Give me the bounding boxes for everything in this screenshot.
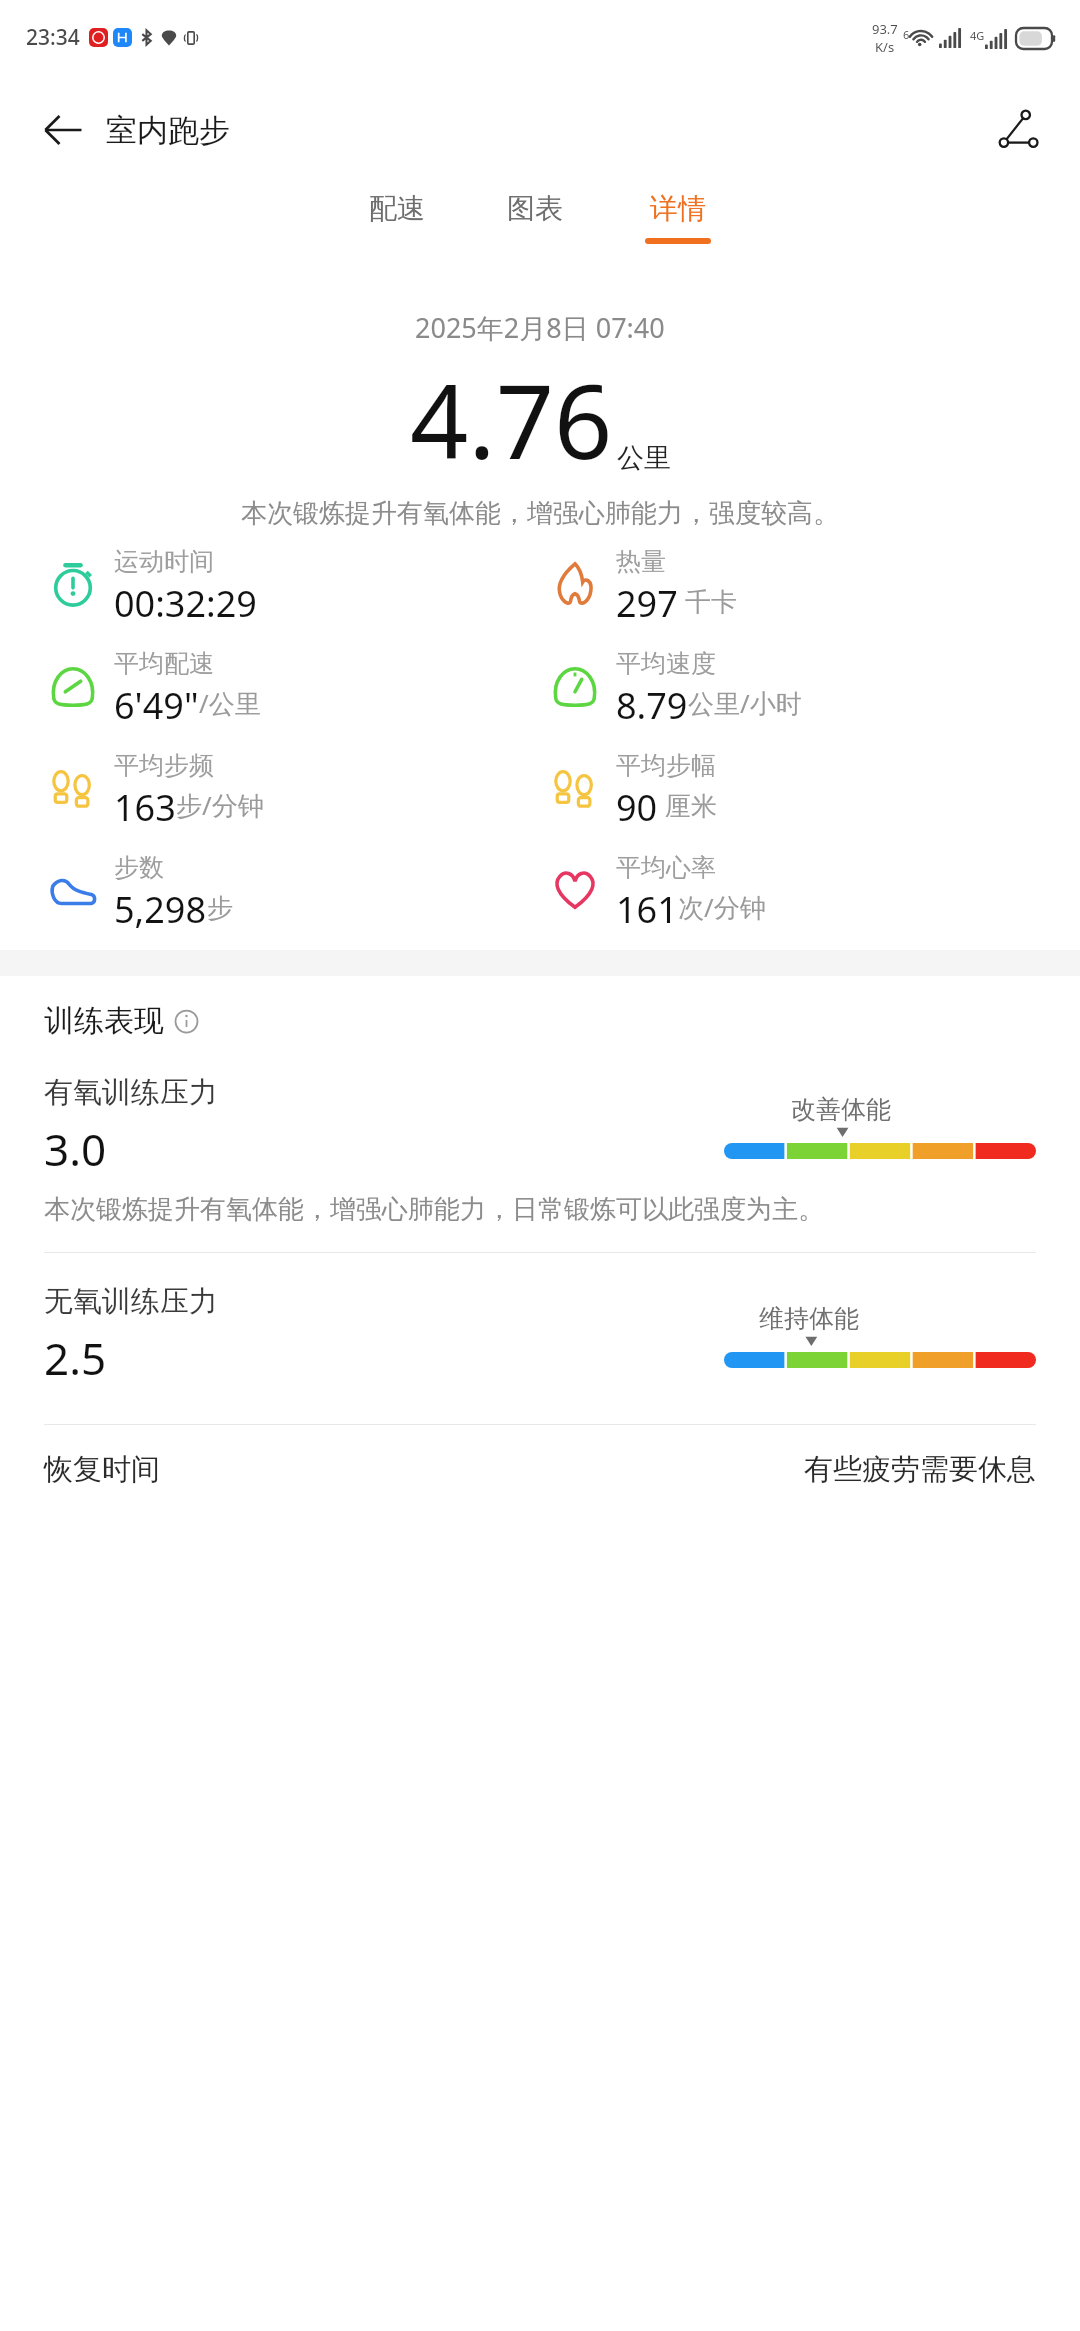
staticText: 90 [616, 783, 658, 826]
staticText: 恢复时间 [44, 1451, 160, 1488]
button[interactable]: 平均心率 [548, 852, 766, 928]
staticText: 千卡 [678, 583, 737, 619]
button[interactable]: 配速 [357, 185, 437, 244]
staticText: 297 [616, 579, 678, 622]
staticText: 公里 [617, 441, 671, 475]
staticText: 次/分钟 [678, 889, 766, 925]
staticText: 热量 [616, 546, 666, 577]
staticText: 6 [903, 27, 910, 42]
staticText: 4.76 [410, 350, 613, 489]
staticText: 无氧训练压力 [44, 1283, 218, 1320]
staticText: 163 [114, 783, 176, 826]
staticText: 图表 [507, 191, 563, 226]
staticText: 2.5 [44, 1328, 107, 1388]
button[interactable]: 运动时间 [46, 546, 257, 622]
button[interactable]: 训练表现 [44, 1002, 199, 1040]
staticText: 详情 [650, 191, 706, 226]
staticText: 厘米 [658, 787, 717, 823]
button[interactable]: 步数 [46, 852, 233, 928]
staticText: 4G [970, 28, 985, 43]
staticText: 5,298 [114, 885, 207, 928]
button[interactable]: Back [34, 101, 92, 159]
staticText: 2025年2月8日 07:40 [415, 309, 665, 346]
staticText: /公里 [199, 685, 261, 721]
staticText: 公里/小时 [688, 685, 802, 721]
button[interactable]: 平均速度 [548, 648, 802, 724]
staticText: 步/分钟 [176, 787, 264, 823]
staticText: 平均心率 [616, 852, 716, 883]
staticText: 步 [207, 892, 233, 925]
staticText: 配速 [369, 191, 425, 226]
staticText: 有氧训练压力 [44, 1074, 218, 1111]
staticText: 本次锻炼提升有氧体能，增强心肺能力，强度较高。 [241, 497, 839, 530]
staticText: K/s [875, 38, 895, 56]
staticText: 步数 [114, 852, 164, 883]
button[interactable]: 平均配速 [46, 648, 261, 724]
staticText: 3.0 [44, 1119, 107, 1179]
staticText: 平均步频 [114, 750, 214, 781]
staticText: 改善体能 [791, 1094, 891, 1125]
staticText: 有些疲劳需要休息 [804, 1451, 1036, 1488]
staticText: 平均速度 [616, 648, 716, 679]
staticText: 维持体能 [759, 1303, 859, 1334]
staticText: 161 [616, 885, 678, 928]
staticText: 训练表现 [44, 1002, 164, 1040]
staticText: 本次锻炼提升有氧体能，增强心肺能力，日常锻炼可以此强度为主。 [44, 1193, 824, 1226]
button[interactable]: Share [988, 99, 1050, 161]
staticText: 93.7 [872, 20, 898, 38]
staticText: 室内跑步 [106, 111, 230, 150]
staticText: 6'49" [114, 681, 199, 724]
button[interactable]: 平均步频 [46, 750, 264, 826]
staticText: 运动时间 [114, 546, 214, 577]
button[interactable]: 平均步幅 [548, 750, 717, 826]
staticText: 平均步幅 [616, 750, 716, 781]
button[interactable]: 图表 [495, 185, 575, 244]
staticText: 8.79 [616, 681, 688, 724]
button[interactable]: 详情 [633, 185, 723, 250]
staticText: 00:32:29 [114, 579, 257, 622]
button[interactable]: 热量 [548, 546, 737, 622]
staticText: 23:34 [26, 23, 80, 52]
staticText: 平均配速 [114, 648, 214, 679]
